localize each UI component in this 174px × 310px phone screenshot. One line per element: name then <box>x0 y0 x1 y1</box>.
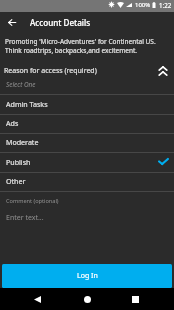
staticText: Publish <box>6 157 31 167</box>
staticText: Moderate <box>6 137 39 147</box>
button[interactable]: Other <box>0 172 174 191</box>
button[interactable]: Admin Tasks <box>0 94 174 114</box>
staticText: Log In <box>77 271 98 281</box>
button[interactable]: Ads <box>0 114 174 133</box>
staticText: Other <box>6 176 26 186</box>
staticText: Account Details <box>30 17 91 28</box>
button[interactable]: Reason for access (required) <box>0 64 174 78</box>
staticText: Ads <box>6 118 19 128</box>
staticText: Select One <box>6 80 36 89</box>
staticText: 100% <box>135 1 151 9</box>
staticText: Comment (optional) <box>6 197 59 205</box>
button[interactable]: Back <box>25 288 49 310</box>
button[interactable]: Collapse <box>157 64 171 78</box>
staticText: Enter text... <box>6 213 44 223</box>
staticText: Admin Tasks <box>6 99 48 109</box>
staticText: Promoting 'Micro-Adventures' for Contine… <box>5 37 173 54</box>
staticText: Reason for access (required) <box>4 66 97 76</box>
button[interactable]: Publish <box>0 152 174 172</box>
staticText: 1:22 <box>159 1 172 9</box>
button[interactable]: Back <box>4 12 20 28</box>
button[interactable]: Log In <box>2 264 172 288</box>
button[interactable]: Moderate <box>0 133 174 152</box>
button[interactable]: Recents <box>123 288 147 310</box>
button[interactable]: Home <box>75 288 99 310</box>
